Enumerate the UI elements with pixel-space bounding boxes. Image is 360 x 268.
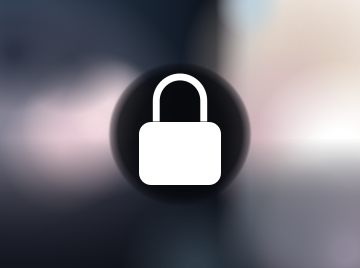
button[interactable]: Content locked — [139, 82, 221, 186]
